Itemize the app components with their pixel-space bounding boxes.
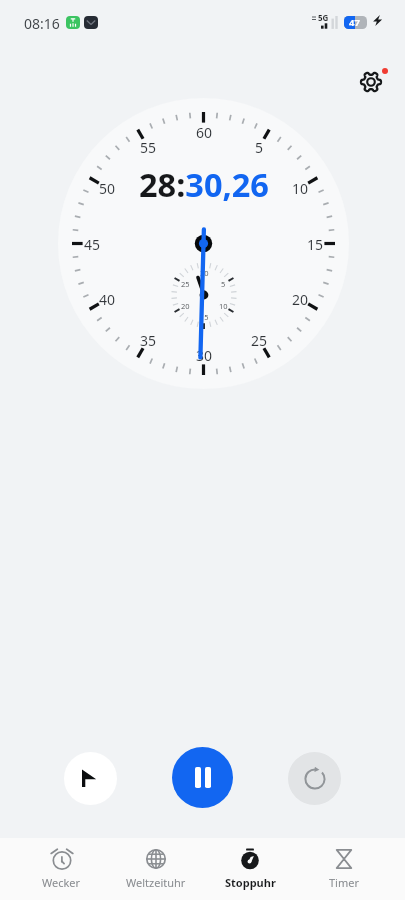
staticText: Timer <box>329 875 359 890</box>
button[interactable]: Zurücksetzen <box>288 752 341 805</box>
staticText: 55 <box>140 138 157 156</box>
staticText: 25 <box>251 331 268 349</box>
staticText: 20 <box>292 290 309 308</box>
staticText: 30 <box>200 268 209 278</box>
staticText: 20 <box>181 301 190 311</box>
button[interactable]: Timer <box>297 838 391 900</box>
button[interactable]: Pause <box>172 747 233 808</box>
staticText: 30 <box>196 346 213 364</box>
button[interactable]: Wecker <box>14 838 109 900</box>
staticText: 25 <box>181 279 190 289</box>
staticText: 15 <box>307 235 324 253</box>
staticText: 45 <box>84 235 101 253</box>
staticText: 15 <box>200 312 209 322</box>
staticText: Weltzeituhr <box>126 875 186 890</box>
staticText: 28:30,26 <box>139 162 269 206</box>
staticText: 5 <box>255 138 264 156</box>
staticText: 10 <box>219 301 228 311</box>
staticText: 50 <box>99 179 116 197</box>
staticText: 47 <box>349 16 360 29</box>
staticText: 60 <box>196 123 213 141</box>
button[interactable]: Settings <box>351 62 391 102</box>
staticText: 5G <box>318 12 329 23</box>
staticText: 35 <box>140 331 157 349</box>
staticText: 5 <box>221 279 226 289</box>
button[interactable]: Weltzeituhr <box>109 838 203 900</box>
staticText: 40 <box>99 290 116 308</box>
button[interactable]: Runde <box>64 752 117 805</box>
button[interactable]: Stoppuhr <box>203 838 297 900</box>
staticText: Wecker <box>42 875 81 890</box>
staticText: 08:16 <box>24 14 60 33</box>
staticText: Stoppuhr <box>225 875 276 890</box>
staticText: 10 <box>292 179 309 197</box>
